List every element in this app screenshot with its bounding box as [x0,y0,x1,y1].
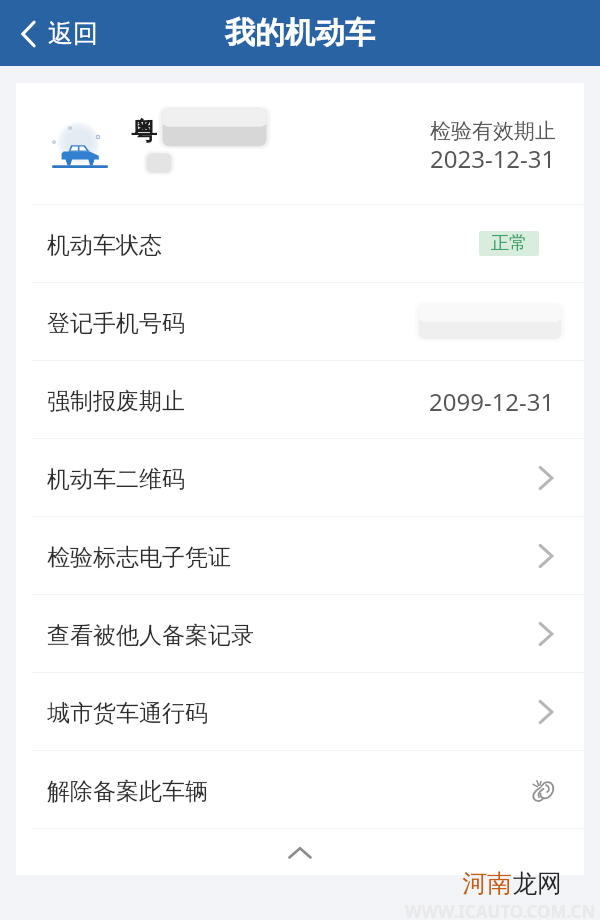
button[interactable]: 登记手机号码 [16,283,584,360]
button[interactable]: 城市货车通行码 [16,673,584,750]
staticText: WWW.ICAUTO.COM.CN [405,900,596,920]
staticText: 返回 [48,18,98,49]
button[interactable]: 收起 [16,829,584,875]
staticText: 2099-12-31 [429,385,555,418]
staticText: 解除备案此车辆 [47,777,208,806]
button[interactable]: 强制报废期止 [16,361,584,438]
staticText: 城市货车通行码 [47,699,208,728]
staticText: 检验标志电子凭证 [47,543,231,572]
other: 解除备案此车辆 [530,778,556,804]
button[interactable]: 机动车状态 [16,205,584,282]
staticText: 机动车状态 [47,231,162,260]
staticText: 登记手机号码 [47,309,185,338]
staticText: 粤 [131,115,157,148]
staticText: 查看被他人备案记录 [47,621,254,650]
button[interactable]: 机动车二维码 [16,439,584,516]
staticText: 机动车二维码 [47,465,185,494]
staticText: 强制报废期止 [47,387,185,416]
button[interactable]: 返回 [12,10,108,57]
button[interactable]: 解除备案此车辆 [16,751,584,828]
staticText: 2023-12-31 [430,142,556,175]
staticText: 河南龙网 [462,868,562,899]
button[interactable]: 粤 [16,83,584,204]
staticText: 我的机动车 [225,14,375,52]
button[interactable]: 检验标志电子凭证 [16,517,584,594]
staticText: 检验有效期止 [430,118,556,144]
button[interactable]: 查看被他人备案记录 [16,595,584,672]
staticText: 正常 [491,232,527,255]
